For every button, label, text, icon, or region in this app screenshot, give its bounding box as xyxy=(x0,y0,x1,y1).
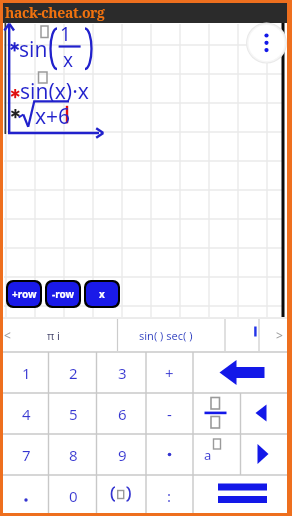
staticText: a xyxy=(204,446,212,464)
button[interactable]: 8 xyxy=(49,434,97,475)
staticText: sin( ) sec( ) xyxy=(139,328,193,343)
button[interactable] xyxy=(226,319,259,351)
button[interactable]: 6 xyxy=(97,393,147,434)
staticText: x xyxy=(63,47,74,73)
button[interactable] xyxy=(0,319,10,351)
staticText: +row xyxy=(12,287,37,301)
staticText: x xyxy=(99,287,105,301)
button[interactable] xyxy=(97,475,147,516)
button[interactable] xyxy=(246,23,287,64)
button[interactable]: 0 xyxy=(49,475,97,516)
button[interactable] xyxy=(193,352,288,393)
staticText: > xyxy=(276,327,283,343)
staticText: sin(x)·x xyxy=(20,77,89,106)
button[interactable]: 9 xyxy=(97,434,147,475)
staticText: 6 xyxy=(118,404,127,424)
staticText: : xyxy=(167,486,172,506)
staticText: π i xyxy=(47,328,60,343)
staticText: 3 xyxy=(118,363,127,383)
staticText: + xyxy=(165,363,174,383)
staticText: 0 xyxy=(69,486,78,506)
button[interactable]: +row xyxy=(8,282,40,306)
button[interactable] xyxy=(193,434,241,475)
staticText: 1 xyxy=(60,21,71,47)
button[interactable]: 2 xyxy=(49,352,97,393)
staticText: hack-cheat.org xyxy=(5,3,105,22)
staticText: - xyxy=(167,404,172,424)
button[interactable]: -row xyxy=(47,282,79,306)
button[interactable]: 1 xyxy=(4,352,49,393)
button[interactable]: 4 xyxy=(4,393,49,434)
button[interactable] xyxy=(241,393,289,434)
button[interactable] xyxy=(10,319,117,351)
button[interactable]: 3 xyxy=(97,352,147,393)
button[interactable]: + xyxy=(146,352,193,393)
button[interactable]: 7 xyxy=(4,434,49,475)
button[interactable]: x xyxy=(86,282,118,306)
staticText: < xyxy=(4,327,11,343)
staticText: -row xyxy=(52,287,75,301)
staticText: 4 xyxy=(22,404,31,424)
staticText: 2 xyxy=(69,363,78,383)
staticText: 7 xyxy=(22,445,31,465)
button[interactable] xyxy=(118,319,225,351)
button[interactable] xyxy=(146,434,193,475)
staticText: 8 xyxy=(69,445,78,465)
button[interactable] xyxy=(241,434,289,475)
staticText: 9 xyxy=(118,445,127,465)
staticText: sin xyxy=(19,35,48,64)
staticText: x+6 xyxy=(35,102,71,131)
button[interactable] xyxy=(193,393,241,434)
button[interactable] xyxy=(193,475,288,516)
button[interactable] xyxy=(259,319,288,351)
button[interactable]: 5 xyxy=(49,393,97,434)
button[interactable]: : xyxy=(146,475,193,516)
button[interactable] xyxy=(4,475,49,516)
staticText: 1 xyxy=(22,363,31,383)
button[interactable]: - xyxy=(146,393,193,434)
staticText: 5 xyxy=(69,404,78,424)
